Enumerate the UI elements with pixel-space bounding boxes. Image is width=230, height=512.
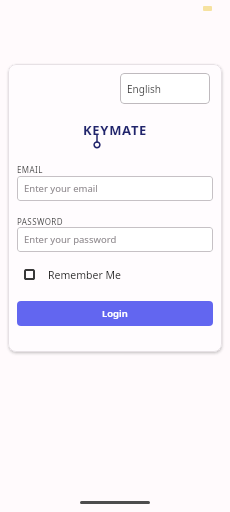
button[interactable]: Remember Me xyxy=(24,268,144,280)
staticText: Enter your password xyxy=(24,233,117,246)
button[interactable]: Enter your email xyxy=(17,176,213,201)
staticText: English xyxy=(127,82,162,96)
button[interactable]: English xyxy=(120,73,210,104)
staticText: Remember Me xyxy=(48,268,121,280)
staticText: KEYMATE xyxy=(83,121,148,139)
button[interactable]: Enter your password xyxy=(17,227,213,252)
button[interactable]: Login xyxy=(17,301,213,326)
staticText: Login xyxy=(102,307,128,320)
staticText: EMAIL xyxy=(17,164,43,175)
staticText: PASSWORD xyxy=(17,216,63,227)
staticText: Enter your email xyxy=(24,182,98,195)
